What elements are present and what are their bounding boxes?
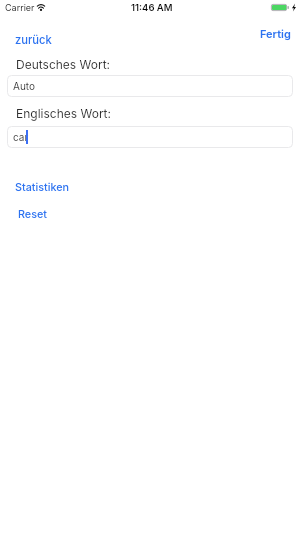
staticText: Englisches Wort:	[16, 106, 111, 121]
button[interactable]: Fertig	[252, 23, 299, 44]
staticText: zurück	[15, 33, 52, 47]
button[interactable]: Auto	[7, 75, 293, 97]
staticText: Statistiken	[15, 181, 70, 194]
staticText: Deutsches Wort:	[16, 57, 111, 72]
staticText: car	[13, 131, 29, 143]
other: Battery charging	[271, 4, 296, 11]
button[interactable]: Statistiken	[7, 177, 78, 198]
button[interactable]: zurück	[7, 29, 60, 51]
staticText: 11:46 AM	[131, 2, 173, 13]
staticText: Auto	[13, 80, 35, 92]
button[interactable]: car	[7, 126, 293, 148]
button[interactable]: Reset	[10, 204, 56, 225]
staticText: Reset	[18, 208, 48, 221]
staticText: Carrier	[5, 2, 35, 13]
other: Wi-Fi signal	[37, 4, 45, 11]
staticText: Fertig	[260, 27, 291, 40]
